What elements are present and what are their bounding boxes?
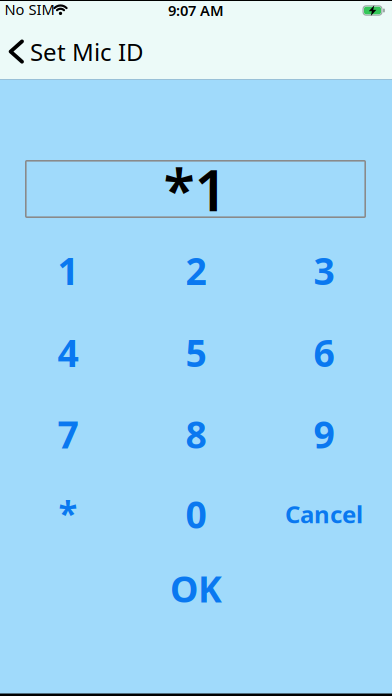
button[interactable]: Cancel <box>260 475 388 553</box>
staticText: 0 <box>185 489 206 539</box>
button[interactable]: 7 <box>4 395 132 473</box>
button[interactable]: 1 <box>4 231 132 309</box>
staticText: OK <box>170 565 222 612</box>
button[interactable]: 3 <box>260 231 388 309</box>
staticText: * <box>58 489 77 535</box>
button[interactable]: 2 <box>132 231 260 309</box>
button[interactable]: 0 <box>132 475 260 553</box>
button[interactable]: 6 <box>260 313 388 391</box>
button[interactable]: Mic ID <box>25 160 366 218</box>
button[interactable]: OK <box>126 552 266 624</box>
staticText: 7 <box>57 409 78 459</box>
button[interactable]: 9 <box>260 395 388 473</box>
staticText: *1 <box>163 151 227 227</box>
button[interactable]: * <box>4 473 132 551</box>
staticText: 9:07 AM <box>168 0 224 20</box>
staticText: 1 <box>57 246 78 295</box>
button[interactable]: 4 <box>4 313 132 391</box>
staticText: Set Mic ID <box>30 36 144 68</box>
staticText: 8 <box>185 409 206 459</box>
staticText: No SIM <box>4 0 54 19</box>
button[interactable]: 8 <box>132 395 260 473</box>
staticText: 9 <box>313 409 334 459</box>
staticText: 5 <box>185 328 206 377</box>
button[interactable]: 5 <box>132 313 260 391</box>
staticText: Cancel <box>285 498 363 530</box>
staticText: 3 <box>313 246 334 295</box>
staticText: 4 <box>57 328 78 377</box>
button[interactable]: Set Mic ID <box>8 36 144 68</box>
staticText: 2 <box>185 246 206 295</box>
staticText: 6 <box>313 328 334 377</box>
